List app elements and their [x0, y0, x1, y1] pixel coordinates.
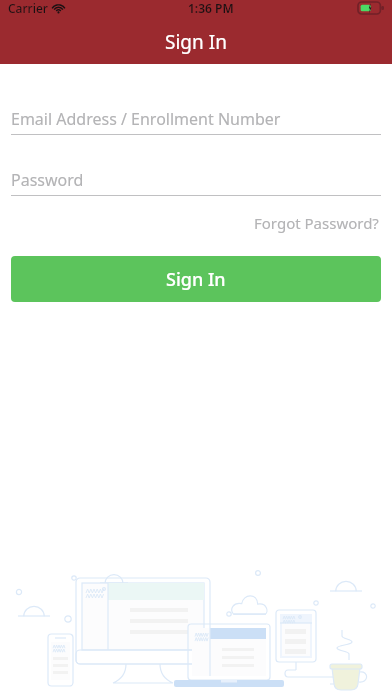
staticText: Sign In: [165, 29, 227, 55]
button[interactable]: Password: [0, 164, 392, 196]
staticText: 1:36 PM: [188, 0, 234, 16]
staticText: Carrier: [8, 0, 48, 16]
staticText: Sign In: [166, 267, 226, 292]
button[interactable]: Email Address / Enrollment Number: [0, 103, 392, 135]
staticText: Email Address / Enrollment Number: [11, 108, 281, 130]
staticText: Password: [11, 169, 84, 191]
button[interactable]: Forgot Password?: [252, 210, 381, 236]
button[interactable]: Sign In: [11, 256, 381, 302]
staticText: Forgot Password?: [254, 213, 379, 233]
other: Devices illustration: [0, 556, 392, 696]
